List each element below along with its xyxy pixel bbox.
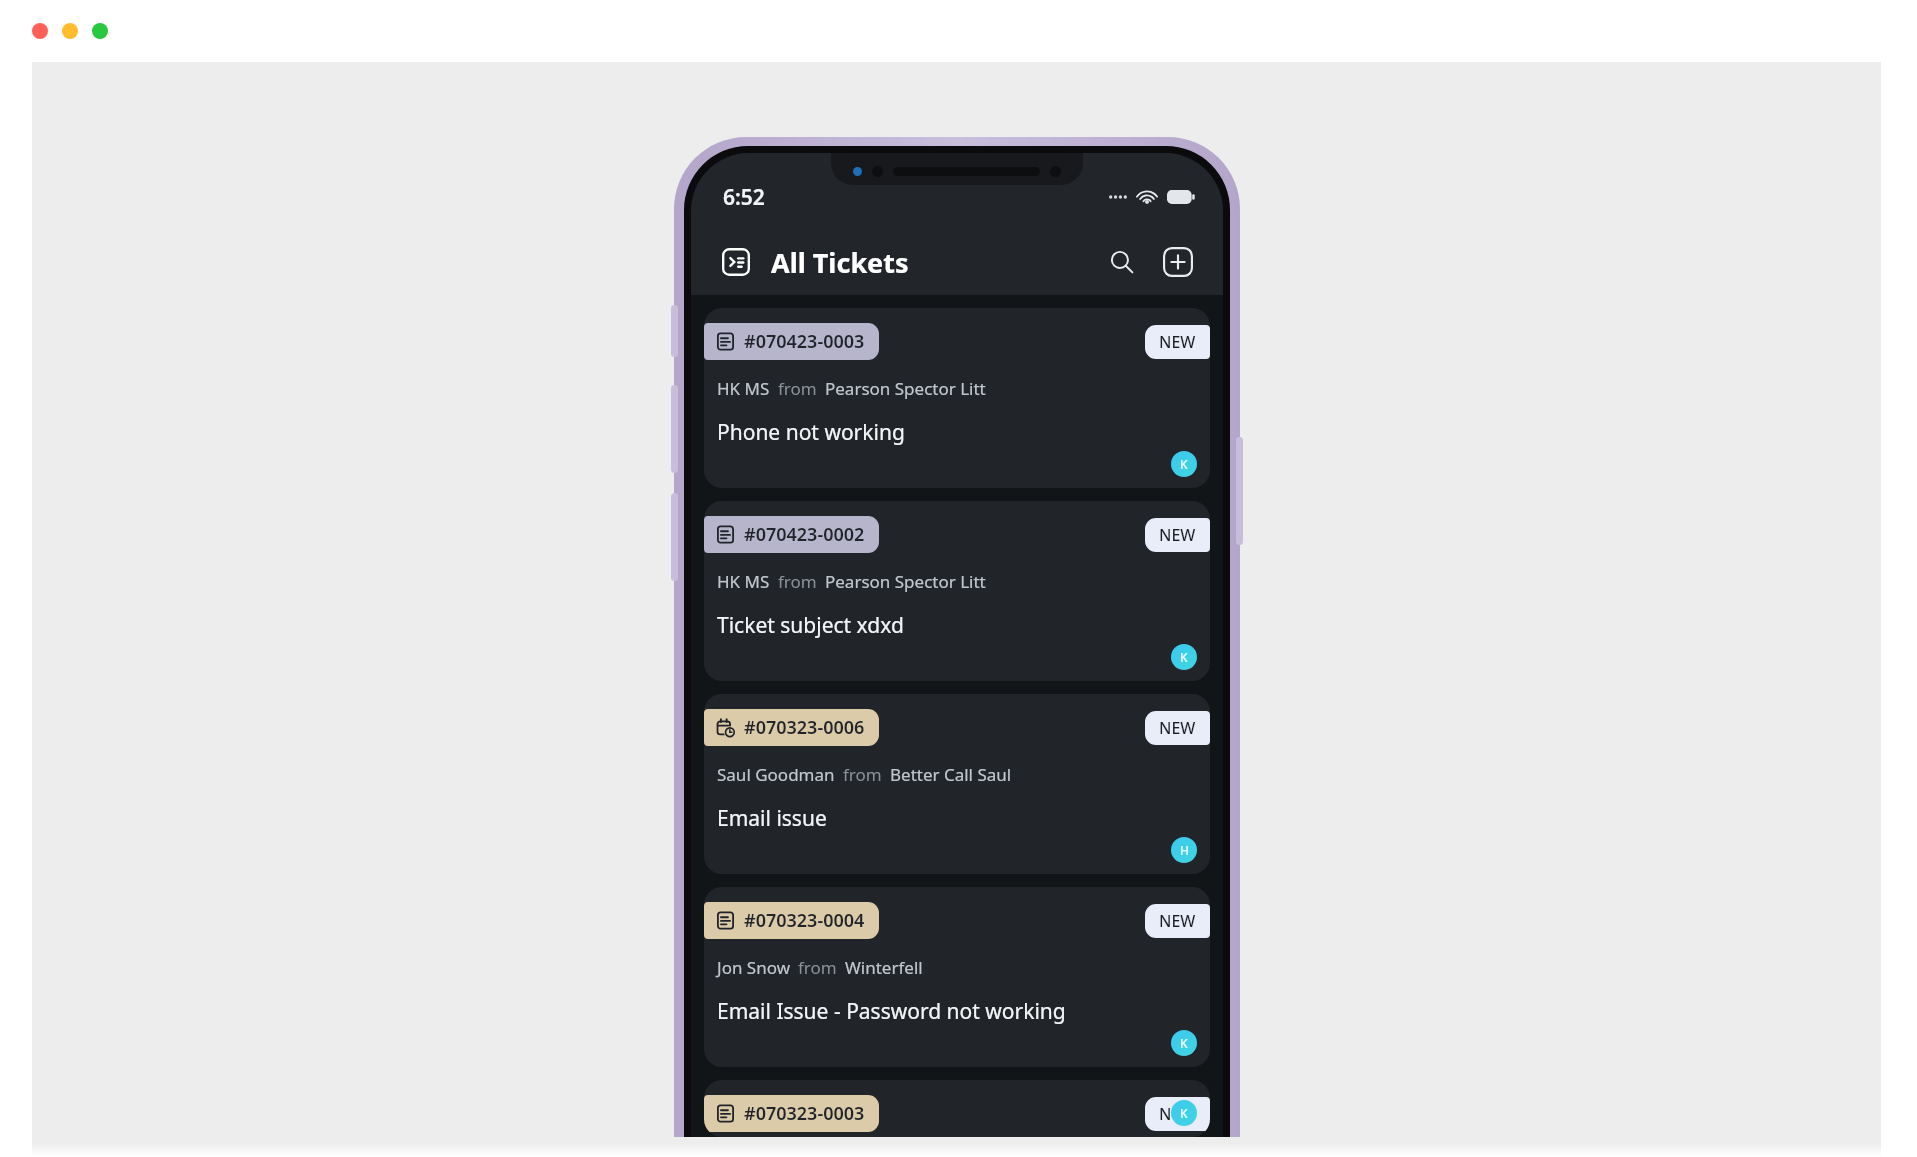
staticText: NEW	[1159, 331, 1196, 353]
staticText: K	[1180, 649, 1188, 665]
staticText: Jon Snow	[717, 956, 790, 979]
staticText: Better Call Saul	[890, 763, 1012, 786]
staticText: Pearson Spector Litt	[825, 570, 986, 593]
staticText: K	[1180, 1035, 1188, 1051]
staticText: NEW	[1159, 910, 1196, 932]
staticText: from	[843, 763, 882, 786]
staticText: Saul Goodman	[717, 763, 835, 786]
staticText: #070323-0003	[744, 1101, 865, 1126]
staticText: Phone not working	[717, 418, 905, 447]
button[interactable]: #070323-0004	[704, 887, 1210, 1067]
button[interactable]: #070323-0006	[704, 694, 1210, 874]
button[interactable]: #070423-0003	[704, 308, 1210, 488]
staticText: Pearson Spector Litt	[825, 377, 986, 400]
staticText: from	[778, 377, 817, 400]
staticText: 6:52	[723, 183, 765, 212]
staticText: K	[1180, 1105, 1188, 1121]
staticText: #070323-0004	[744, 908, 865, 933]
staticText: #070323-0006	[744, 715, 865, 740]
button[interactable]: New ticket	[1155, 239, 1201, 285]
staticText: #070423-0002	[744, 522, 865, 547]
staticText: from	[798, 956, 837, 979]
staticText: H	[1180, 842, 1189, 858]
staticText: HK MS	[717, 570, 770, 593]
button[interactable]: Search	[1099, 239, 1145, 285]
staticText: Email Issue - Password not working	[717, 997, 1066, 1026]
button[interactable]: Menu	[715, 241, 757, 283]
staticText: HK MS	[717, 377, 770, 400]
staticText: NEW	[1159, 524, 1196, 546]
staticText: from	[778, 570, 817, 593]
staticText: NEW	[1159, 1103, 1196, 1125]
staticText: Ticket subject xdxd	[717, 611, 904, 640]
staticText: Email issue	[717, 804, 827, 833]
staticText: Winterfell	[845, 956, 923, 979]
staticText: K	[1180, 456, 1188, 472]
button[interactable]: #070323-0003	[704, 1080, 1210, 1137]
staticText: NEW	[1159, 717, 1196, 739]
staticText: All Tickets	[771, 244, 909, 281]
staticText: #070423-0003	[744, 329, 865, 354]
button[interactable]: #070423-0002	[704, 501, 1210, 681]
